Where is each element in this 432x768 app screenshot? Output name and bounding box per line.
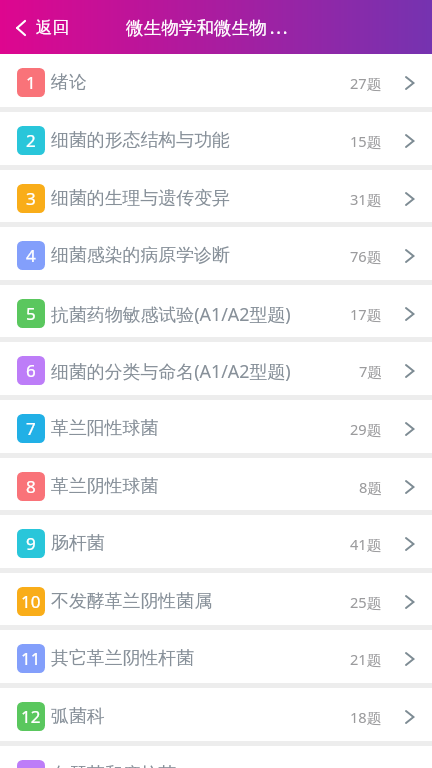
other: Back [16,20,25,36]
staticText: 21题 [350,649,382,669]
staticText: 31题 [350,189,382,209]
staticText: 革兰阳性球菌 [51,417,159,440]
button[interactable]: Back [0,9,83,46]
staticText: 17题 [350,304,382,324]
staticText: 15题 [350,131,382,151]
staticText: 微生物学和微生物 . . . [126,15,288,39]
staticText: 1 [26,71,36,94]
button[interactable]: 5 [0,285,432,338]
button[interactable]: 11 [0,630,432,683]
staticText: 肠杆菌 [51,532,105,555]
button[interactable]: 12 [0,688,432,741]
staticText: 细菌的形态结构与功能 [51,129,230,152]
button[interactable]: 1 [0,54,432,107]
staticText: 弧菌科 [51,705,105,728]
staticText: 3 [26,187,36,210]
staticText: 细菌的分类与命名(A1/A2型题) [51,359,291,383]
staticText: 7 [26,417,36,440]
button[interactable]: 4 [0,227,432,280]
staticText: 25题 [350,592,382,612]
staticText: 12 [21,705,41,728]
staticText: 11 [21,647,41,670]
staticText: 绪论 [51,71,87,94]
button[interactable]: 3 [0,170,432,223]
staticText: 7题 [359,361,382,381]
button[interactable]: 7 [0,400,432,453]
staticText: 10 [21,590,41,613]
staticText: 返回 [36,17,69,38]
staticText: 革兰阴性球菌 [51,475,159,498]
staticText: 抗菌药物敏感试验(A1/A2型题) [51,302,291,326]
button[interactable]: 2 [0,112,432,165]
staticText: 41题 [350,534,382,554]
button[interactable]: 6 [0,342,432,395]
staticText: 18题 [350,707,382,727]
button[interactable]: 13 [0,746,432,768]
staticText: 4 [26,244,36,267]
staticText: 8 [26,475,36,498]
button[interactable]: 9 [0,515,432,568]
staticText: 27题 [350,73,382,93]
button[interactable]: 8 [0,458,432,511]
staticText: 6 [26,359,36,382]
staticText: 2 [26,129,36,152]
staticText: 29题 [350,419,382,439]
staticText: 其它革兰阴性杆菌 [51,647,195,670]
staticText: 细菌的生理与遗传变异 [51,187,230,210]
staticText: 5 [26,302,36,325]
staticText: 8题 [359,477,382,497]
staticText: 9 [26,532,36,555]
staticText: 不发酵革兰阴性菌属 [51,590,213,613]
staticText: 奈瑟菌和摩拉菌 [51,763,177,768]
staticText: 细菌感染的病原学诊断 [51,244,230,267]
staticText: 76题 [350,246,382,266]
button[interactable]: 10 [0,573,432,626]
